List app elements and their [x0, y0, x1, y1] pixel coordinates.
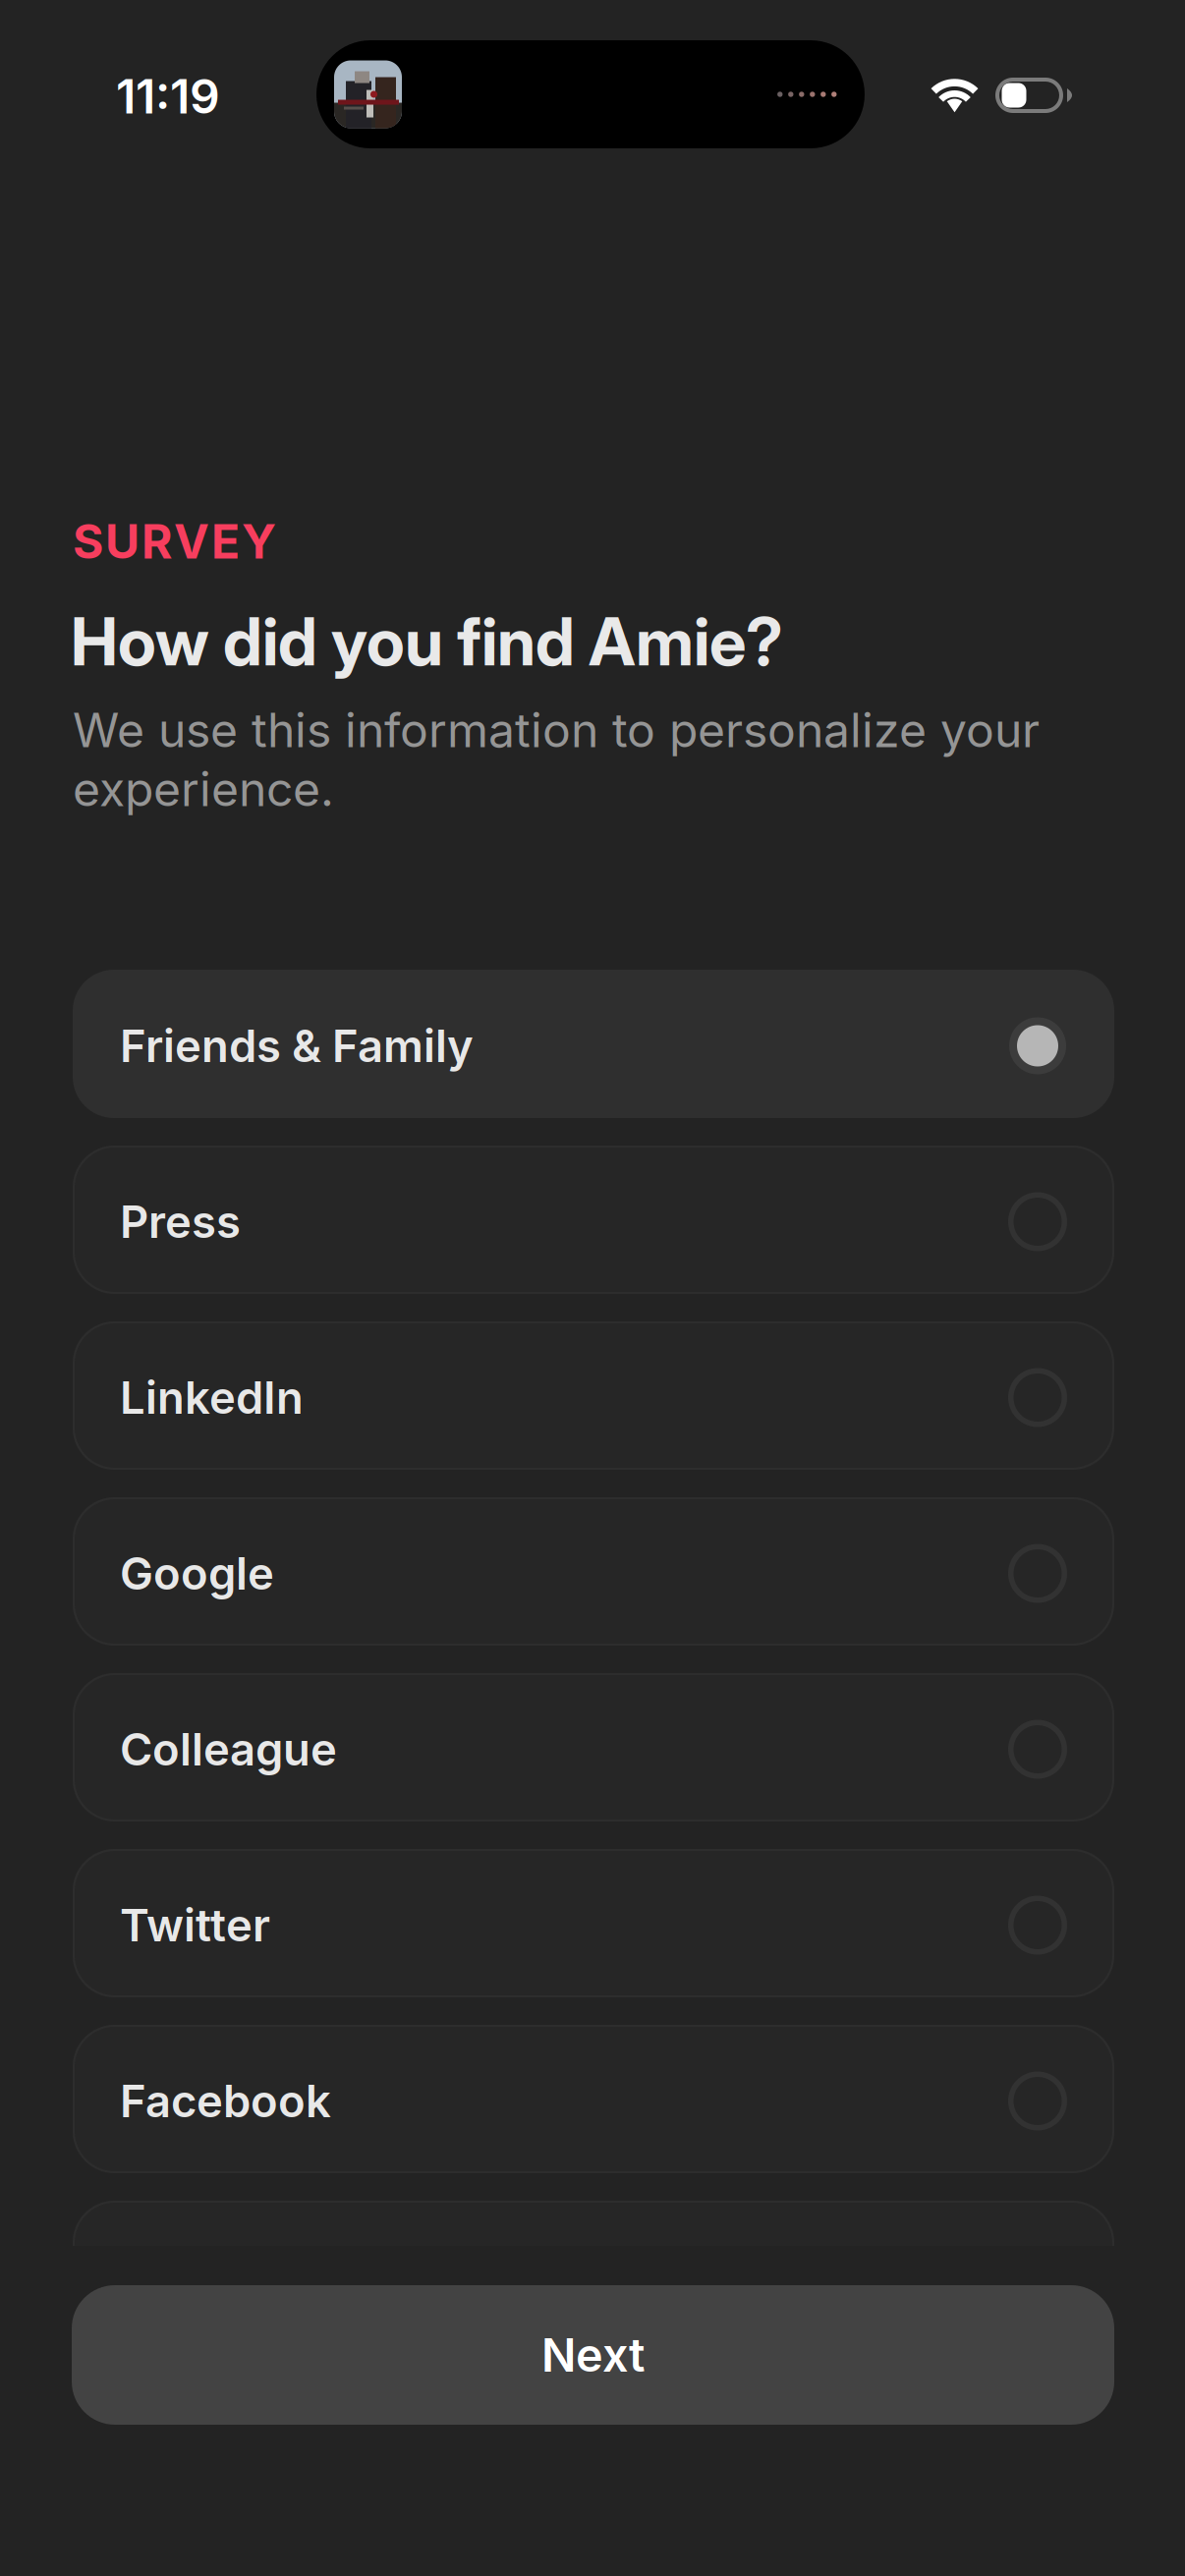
button[interactable]: Next: [72, 2285, 1114, 2425]
button[interactable]: Facebook: [73, 2025, 1114, 2173]
staticText: Friends & Family: [120, 1019, 474, 1073]
staticText: LinkedIn: [120, 1371, 304, 1425]
staticText: Press: [120, 1195, 241, 1249]
button[interactable]: Press: [73, 1146, 1114, 1294]
button[interactable]: Twitter: [73, 1849, 1114, 1997]
staticText: How did you find Amie?: [71, 602, 783, 681]
staticText: Other: [120, 2250, 242, 2304]
button[interactable]: Colleague: [73, 1673, 1114, 1821]
staticText: Twitter: [120, 1898, 270, 1952]
staticText: Next: [541, 2327, 645, 2383]
button[interactable]: Google: [73, 1497, 1114, 1646]
staticText: Google: [120, 1546, 274, 1600]
staticText: Facebook: [120, 2074, 331, 2128]
button[interactable]: Friends & Family: [73, 970, 1114, 1118]
button[interactable]: Other: [73, 2201, 1114, 2349]
staticText: 11:19: [116, 68, 220, 125]
button[interactable]: LinkedIn: [73, 1321, 1114, 1470]
staticText: Colleague: [120, 1722, 337, 1776]
staticText: We use this information to personalize y…: [73, 701, 1040, 818]
staticText: SURVEY: [73, 513, 276, 570]
